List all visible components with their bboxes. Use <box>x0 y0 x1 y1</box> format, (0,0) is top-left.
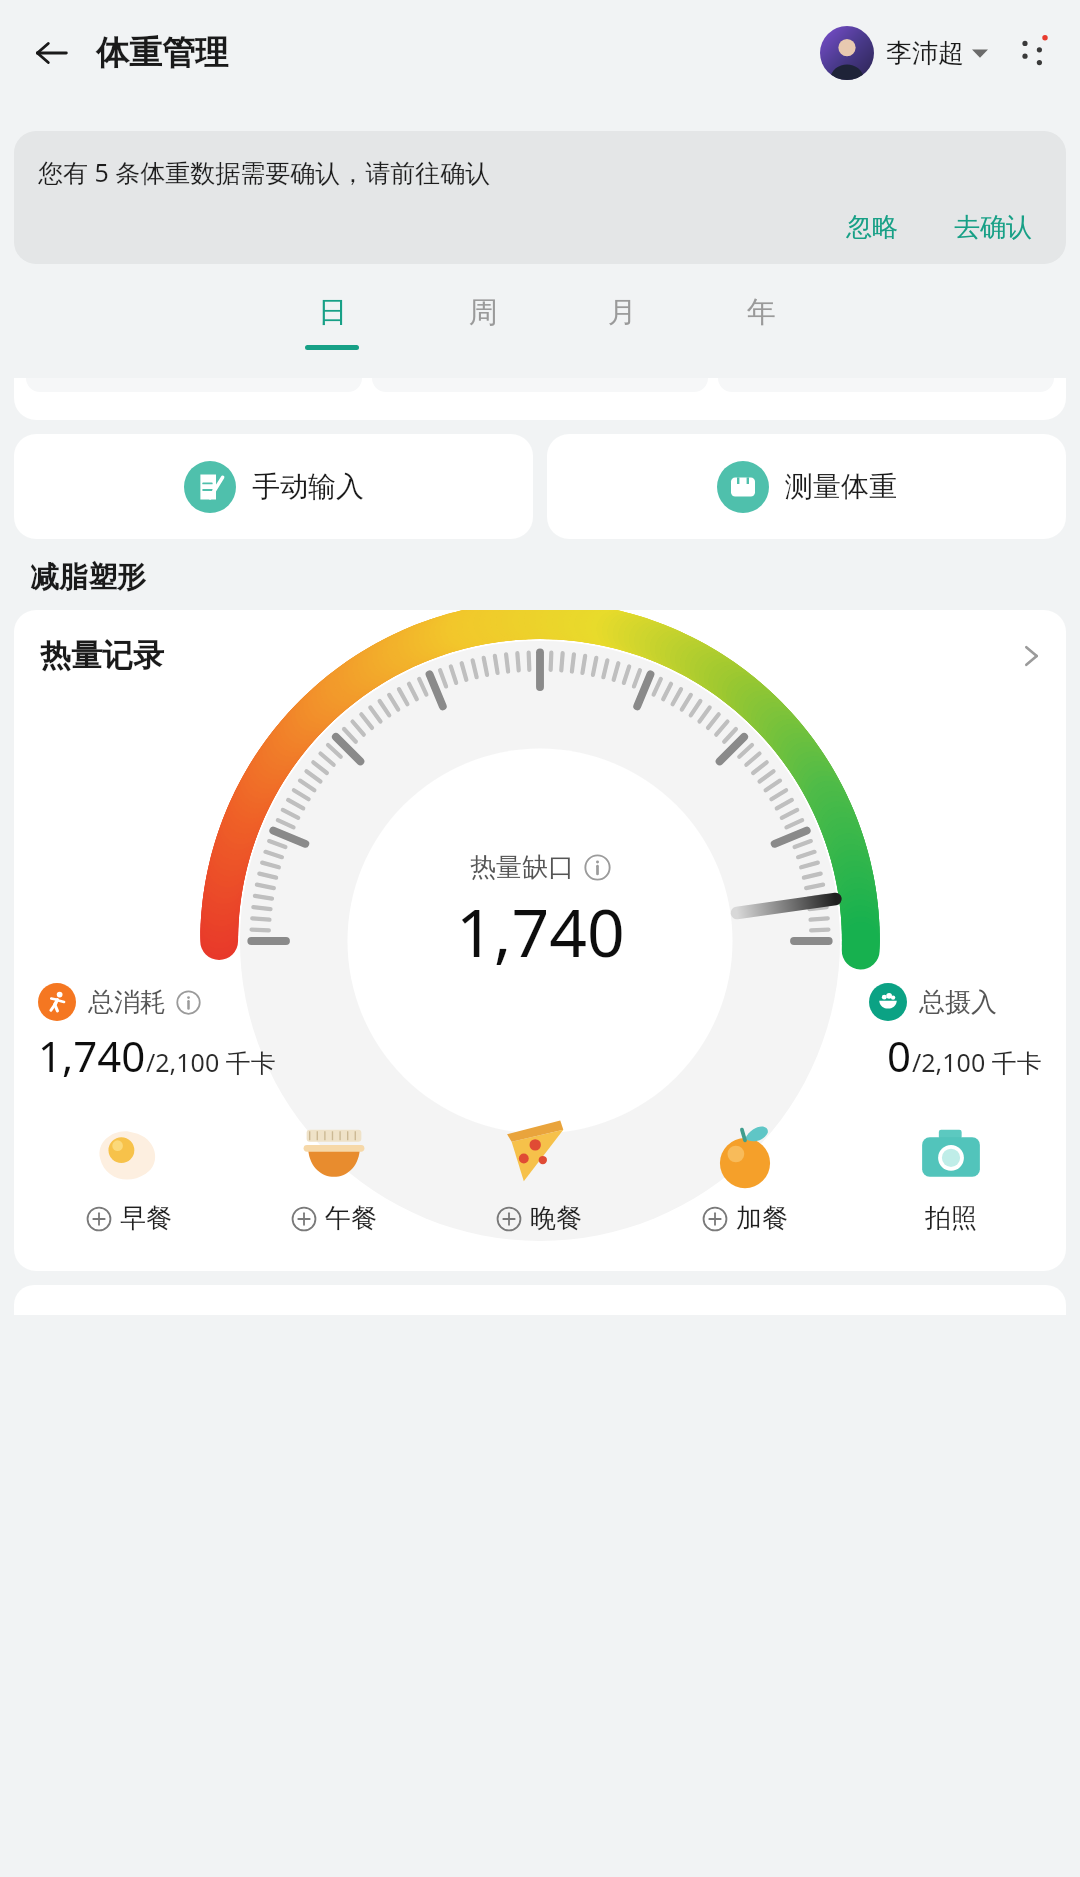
staticText: 李沛超 <box>886 37 964 70</box>
button[interactable]: 午餐 <box>231 1110 436 1241</box>
button[interactable]: 总摄入 <box>869 983 1042 1021</box>
button[interactable]: 拍照 <box>848 1110 1054 1241</box>
staticText: 1,740 <box>456 886 625 976</box>
staticText: 日 <box>318 294 347 331</box>
staticText: 热量缺口 <box>470 851 574 884</box>
button[interactable]: 加餐 <box>642 1110 848 1241</box>
staticText: 年 <box>747 294 776 331</box>
other: Open <box>1018 643 1044 669</box>
staticText: 早餐 <box>120 1202 172 1235</box>
staticText: 手动输入 <box>252 469 364 504</box>
button[interactable]: 日 <box>289 288 375 356</box>
staticText: 您有 5 条体重数据需要确认，请前往确认 <box>38 155 491 189</box>
button[interactable]: 年 <box>731 288 792 356</box>
button[interactable]: More options <box>1006 26 1060 80</box>
button[interactable]: 早餐 <box>26 1110 231 1241</box>
staticText: 热量记录 <box>40 636 164 675</box>
button[interactable]: 手动输入 <box>14 434 533 539</box>
button[interactable]: Back <box>22 24 80 82</box>
staticText: 减脂塑形 <box>30 559 146 596</box>
button[interactable]: 总消耗 <box>38 983 201 1021</box>
staticText: /2,100 千卡 <box>912 1045 1042 1079</box>
staticText: 去确认 <box>954 211 1032 244</box>
button[interactable]: 测量体重 <box>547 434 1066 539</box>
button[interactable]: 晚餐 <box>436 1110 642 1241</box>
other: Info <box>584 854 611 881</box>
staticText: 测量体重 <box>785 469 897 504</box>
staticText: 午餐 <box>325 1202 377 1235</box>
staticText: 体重管理 <box>96 32 228 74</box>
button[interactable]: 去确认 <box>944 205 1042 250</box>
staticText: 周 <box>469 294 498 331</box>
staticText: 总消耗 <box>88 986 166 1019</box>
button[interactable]: 忽略 <box>836 205 908 250</box>
staticText: 晚餐 <box>530 1202 582 1235</box>
button[interactable]: 李沛超 <box>816 20 992 86</box>
button[interactable]: 您有 5 条体重数据需要确认，请前往确认 <box>14 131 1066 264</box>
staticText: 0 <box>887 1027 912 1084</box>
staticText: 加餐 <box>736 1202 788 1235</box>
button[interactable]: 月 <box>592 288 653 356</box>
staticText: 月 <box>608 294 637 331</box>
staticText: 1,740 <box>38 1027 146 1084</box>
staticText: 总摄入 <box>919 986 997 1019</box>
button[interactable]: 周 <box>453 288 514 356</box>
staticText: 忽略 <box>846 211 898 244</box>
staticText: 拍照 <box>925 1202 977 1235</box>
button[interactable]: 热量记录 <box>14 610 1066 683</box>
staticText: /2,100 千卡 <box>146 1045 276 1079</box>
